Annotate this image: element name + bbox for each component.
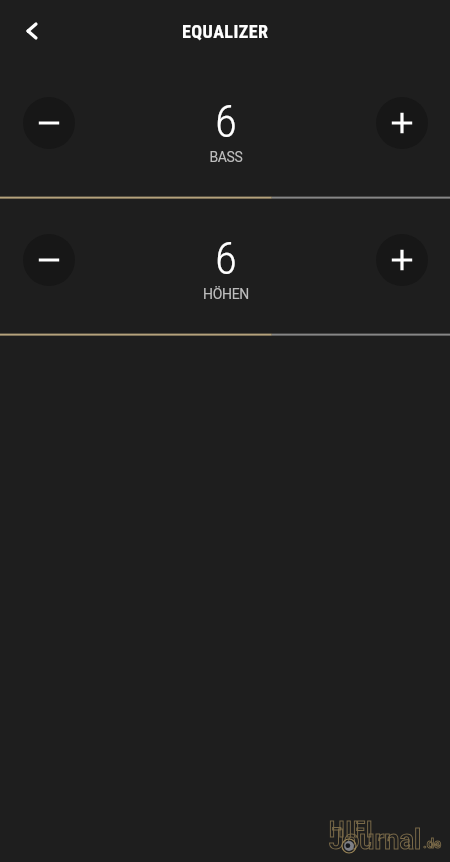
staticText: .de — [423, 836, 442, 851]
staticText: Journal — [329, 824, 422, 856]
button[interactable]: Decrease BASS — [23, 97, 75, 149]
staticText: 6 — [215, 232, 237, 285]
button[interactable]: Back — [10, 9, 54, 53]
staticText: BASS — [209, 149, 243, 165]
staticText: HIFI — [329, 817, 374, 843]
button[interactable]: Increase HÖHEN — [376, 234, 428, 286]
staticText: HÖHEN — [203, 286, 249, 302]
button[interactable]: Increase BASS — [376, 97, 428, 149]
staticText: EQUALIZER — [182, 21, 269, 42]
staticText: 6 — [215, 95, 237, 148]
button[interactable]: Decrease HÖHEN — [23, 234, 75, 286]
